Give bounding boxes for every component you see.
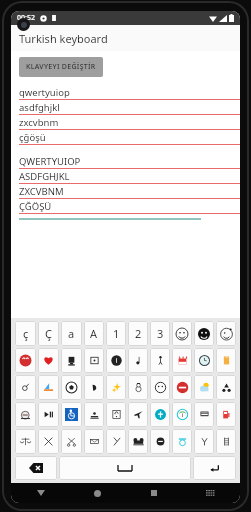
button[interactable] <box>61 375 82 400</box>
button[interactable] <box>84 429 104 454</box>
staticText: 2 <box>135 326 142 341</box>
button[interactable] <box>194 429 214 454</box>
button[interactable] <box>106 429 126 454</box>
button[interactable] <box>38 429 59 454</box>
button[interactable] <box>128 375 148 400</box>
button[interactable] <box>38 375 59 400</box>
staticText: zxcvbnm <box>19 116 59 129</box>
staticText: Ç <box>45 326 52 341</box>
button[interactable]: Ç <box>38 321 59 346</box>
button[interactable]: Recents <box>146 485 162 501</box>
button[interactable] <box>216 321 236 346</box>
button[interactable]: Switch keyboard <box>202 485 218 501</box>
staticText: qwertyuiop <box>19 86 70 99</box>
button[interactable] <box>172 375 192 400</box>
staticText: ç <box>23 326 29 341</box>
button[interactable]: KLAVYEYI DEĞİŞTİR <box>19 57 103 77</box>
button[interactable] <box>172 402 192 427</box>
button[interactable] <box>194 348 214 373</box>
staticText: KLAVYEYI DEĞİŞTİR <box>26 62 96 72</box>
button[interactable]: a <box>61 321 82 346</box>
staticText: 3 <box>157 326 164 341</box>
staticText: çğöşü <box>19 131 46 144</box>
button[interactable] <box>194 402 214 427</box>
button[interactable] <box>172 429 192 454</box>
button[interactable] <box>216 429 236 454</box>
button[interactable]: 2 <box>128 321 148 346</box>
button[interactable] <box>106 375 126 400</box>
button[interactable]: Backspace <box>15 456 57 480</box>
button[interactable]: Back <box>33 485 49 501</box>
button[interactable] <box>216 375 236 400</box>
button[interactable] <box>194 375 214 400</box>
button[interactable] <box>150 348 170 373</box>
staticText: ASDFGHJKL <box>19 170 70 183</box>
button[interactable]: A <box>84 321 104 346</box>
button[interactable] <box>38 402 59 427</box>
button[interactable] <box>106 348 126 373</box>
button[interactable] <box>61 429 82 454</box>
button[interactable] <box>194 321 214 346</box>
button[interactable] <box>128 402 148 427</box>
button[interactable] <box>84 375 104 400</box>
button[interactable] <box>216 348 236 373</box>
button[interactable] <box>15 429 36 454</box>
button[interactable] <box>172 321 192 346</box>
button[interactable] <box>150 429 170 454</box>
staticText: ZXCVBNM <box>19 185 64 198</box>
button[interactable] <box>15 375 36 400</box>
button[interactable] <box>150 375 170 400</box>
staticText: 1 <box>113 326 120 341</box>
button[interactable] <box>172 348 192 373</box>
button[interactable]: ç <box>15 321 36 346</box>
button[interactable]: 3 <box>150 321 170 346</box>
button[interactable] <box>128 429 148 454</box>
button[interactable] <box>128 348 148 373</box>
button[interactable] <box>38 348 59 373</box>
button[interactable] <box>61 402 82 427</box>
button[interactable] <box>15 402 36 427</box>
staticText: QWERTYUIOP <box>19 155 81 168</box>
staticText: a <box>68 326 75 341</box>
button[interactable]: Enter <box>193 456 236 480</box>
button[interactable]: 1 <box>106 321 126 346</box>
button[interactable] <box>106 402 126 427</box>
button[interactable] <box>84 402 104 427</box>
button[interactable]: Space <box>59 456 191 480</box>
button[interactable] <box>216 402 236 427</box>
staticText: 00:52 <box>17 13 35 23</box>
button[interactable] <box>150 402 170 427</box>
staticText: asdfghjkl <box>19 101 60 114</box>
staticText: A <box>90 326 98 341</box>
button[interactable]: Home <box>89 485 105 501</box>
staticText: ÇĞÖŞÜ <box>19 200 52 213</box>
button[interactable] <box>15 348 36 373</box>
button[interactable] <box>61 348 82 373</box>
button[interactable] <box>84 348 104 373</box>
staticText: Turkish keyboard <box>19 31 108 46</box>
